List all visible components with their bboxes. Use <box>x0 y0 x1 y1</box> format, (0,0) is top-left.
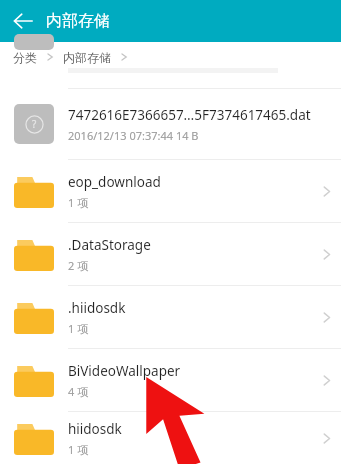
staticText: 分类 <box>13 50 37 65</box>
button[interactable]: ? <box>0 89 341 159</box>
staticText: 内部存储 <box>46 11 110 31</box>
staticText: 1 项 <box>68 195 89 210</box>
staticText: 7472616E7366657…5F7374617465.dat <box>68 106 311 124</box>
button[interactable]: Back <box>0 0 46 42</box>
staticText: BiVideoWallpaper <box>68 362 181 380</box>
staticText: 2 项 <box>68 258 89 273</box>
staticText: hiidosdk <box>68 420 122 438</box>
button[interactable]: BiVideoWallpaper <box>0 349 341 411</box>
staticText: ? <box>32 117 37 131</box>
staticText: .DataStorage <box>68 236 151 254</box>
staticText: 2016/12/13 07:37:44 14 B <box>68 128 199 143</box>
staticText: 4 项 <box>68 384 89 399</box>
staticText: 1 项 <box>68 442 89 457</box>
button[interactable]: eop_download <box>0 160 341 222</box>
staticText: 1 项 <box>68 321 89 336</box>
button[interactable]: 内部存储 <box>63 50 111 65</box>
button[interactable]: .DataStorage <box>0 223 341 285</box>
staticText: 内部存储 <box>63 50 111 65</box>
button[interactable]: 分类 <box>13 50 37 65</box>
button[interactable]: .hiidosdk <box>0 286 341 348</box>
staticText: .hiidosdk <box>68 299 126 317</box>
staticText: eop_download <box>68 173 161 191</box>
button[interactable]: hiidosdk <box>0 412 341 464</box>
